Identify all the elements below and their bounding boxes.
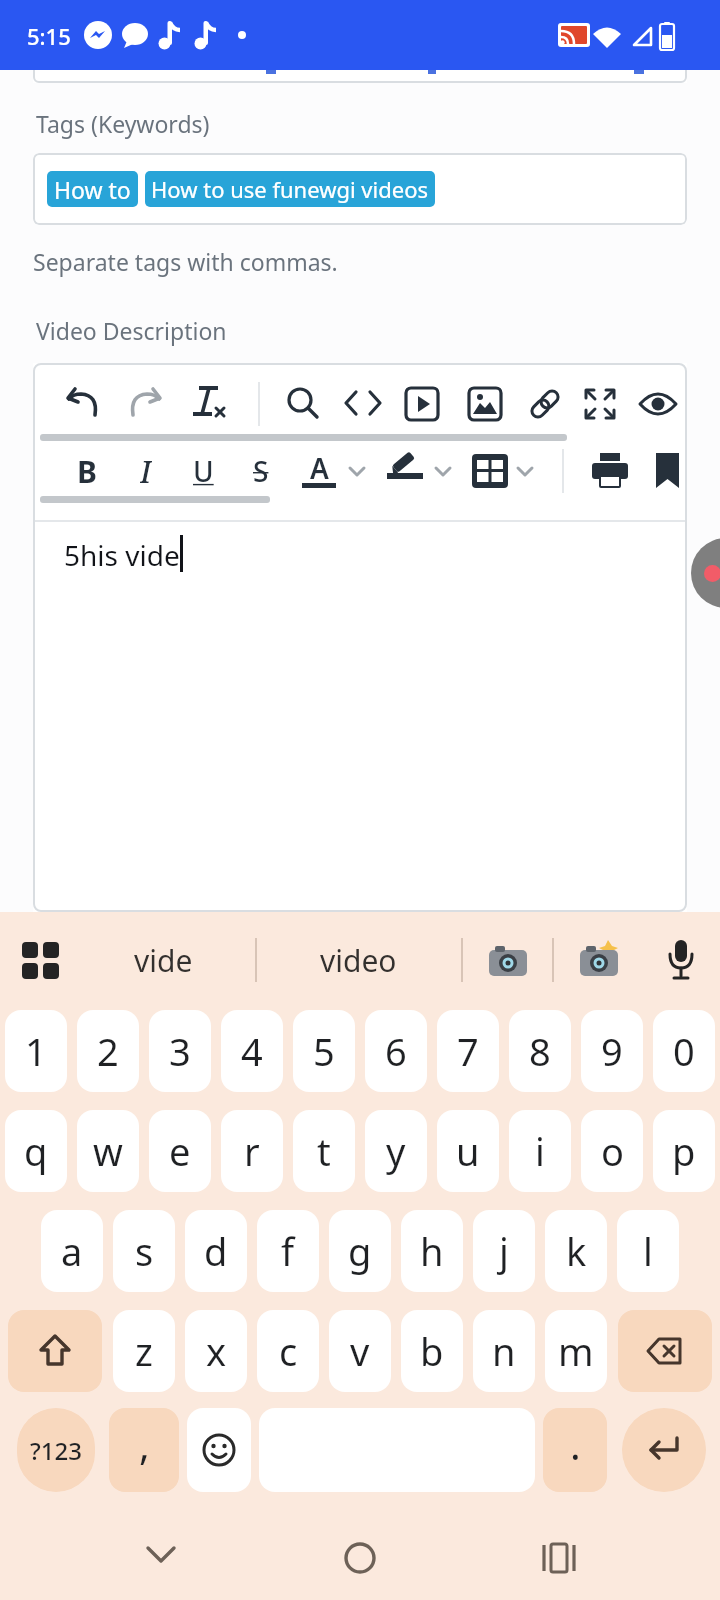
button[interactable] bbox=[121, 21, 149, 49]
button[interactable] bbox=[187, 1408, 251, 1492]
staticText: 6 bbox=[385, 1025, 407, 1077]
button[interactable] bbox=[238, 31, 246, 39]
staticText: c bbox=[279, 1325, 298, 1377]
button[interactable]: 4 bbox=[221, 1010, 283, 1092]
button[interactable] bbox=[487, 940, 529, 980]
button[interactable]: . bbox=[543, 1408, 607, 1492]
button[interactable] bbox=[404, 386, 440, 422]
button[interactable] bbox=[344, 390, 382, 418]
button[interactable] bbox=[348, 466, 366, 478]
button[interactable] bbox=[578, 940, 620, 980]
button[interactable]: j bbox=[473, 1210, 535, 1292]
button[interactable] bbox=[146, 1546, 176, 1566]
button[interactable]: How to use funewgi videos bbox=[145, 171, 435, 207]
button[interactable]: g bbox=[329, 1210, 391, 1292]
button[interactable]: p bbox=[653, 1110, 715, 1192]
staticText: vide bbox=[134, 940, 193, 981]
button[interactable]: s bbox=[113, 1210, 175, 1292]
button[interactable] bbox=[22, 942, 60, 980]
button[interactable]: n bbox=[473, 1310, 535, 1392]
staticText: How to bbox=[54, 174, 131, 205]
button[interactable]: 1 bbox=[5, 1010, 67, 1092]
staticText: v bbox=[350, 1325, 370, 1377]
button[interactable]: c bbox=[257, 1310, 319, 1392]
staticText: Video Description bbox=[36, 315, 227, 346]
button[interactable]: ?123 bbox=[17, 1408, 95, 1492]
button[interactable]: x bbox=[185, 1310, 247, 1392]
button[interactable]: q bbox=[5, 1110, 67, 1192]
button[interactable] bbox=[516, 466, 534, 478]
button[interactable]: b bbox=[401, 1310, 463, 1392]
button[interactable] bbox=[593, 25, 621, 49]
button[interactable] bbox=[527, 387, 563, 421]
button[interactable] bbox=[558, 23, 590, 49]
button[interactable] bbox=[84, 21, 112, 49]
staticText: 8 bbox=[529, 1025, 551, 1077]
button[interactable]: 9 bbox=[581, 1010, 643, 1092]
staticText: m bbox=[558, 1325, 594, 1377]
button[interactable]: u bbox=[437, 1110, 499, 1192]
button[interactable]: vide bbox=[93, 936, 233, 984]
button[interactable] bbox=[656, 453, 679, 488]
button[interactable]: 6 bbox=[365, 1010, 427, 1092]
staticText: k bbox=[566, 1225, 587, 1277]
button[interactable]: w bbox=[77, 1110, 139, 1192]
button[interactable] bbox=[542, 1544, 576, 1572]
button[interactable]: 2 bbox=[77, 1010, 139, 1092]
staticText: 9 bbox=[601, 1025, 623, 1077]
button[interactable]: o bbox=[581, 1110, 643, 1192]
button[interactable] bbox=[660, 22, 674, 50]
button[interactable]: d bbox=[185, 1210, 247, 1292]
button[interactable]: v bbox=[329, 1310, 391, 1392]
button[interactable] bbox=[128, 387, 162, 417]
button[interactable]: 8 bbox=[509, 1010, 571, 1092]
button[interactable]: , bbox=[109, 1408, 179, 1492]
button[interactable] bbox=[156, 20, 182, 50]
button[interactable] bbox=[638, 390, 678, 418]
button[interactable]: k bbox=[545, 1210, 607, 1292]
button[interactable] bbox=[622, 1408, 706, 1492]
button[interactable] bbox=[472, 454, 508, 488]
button[interactable] bbox=[632, 26, 654, 48]
button[interactable] bbox=[618, 1310, 712, 1392]
button[interactable] bbox=[192, 20, 218, 50]
staticText: S bbox=[253, 452, 269, 490]
button[interactable]: y bbox=[365, 1110, 427, 1192]
button[interactable]: e bbox=[149, 1110, 211, 1192]
button[interactable] bbox=[386, 449, 426, 479]
button[interactable]: 3 bbox=[149, 1010, 211, 1092]
button[interactable] bbox=[434, 466, 452, 478]
button[interactable] bbox=[8, 1310, 102, 1392]
button[interactable]: 7 bbox=[437, 1010, 499, 1092]
button[interactable]: 0 bbox=[653, 1010, 715, 1092]
button[interactable] bbox=[691, 538, 720, 608]
button[interactable]: z bbox=[113, 1310, 175, 1392]
button[interactable]: h bbox=[401, 1210, 463, 1292]
button[interactable]: r bbox=[221, 1110, 283, 1192]
button[interactable] bbox=[467, 386, 503, 422]
staticText: 2 bbox=[97, 1025, 119, 1077]
button[interactable]: l bbox=[617, 1210, 679, 1292]
button[interactable]: 5 bbox=[293, 1010, 355, 1092]
staticText: s bbox=[135, 1225, 154, 1277]
button[interactable] bbox=[259, 1408, 535, 1492]
button[interactable] bbox=[190, 386, 228, 422]
button[interactable] bbox=[583, 387, 617, 421]
staticText: r bbox=[244, 1125, 260, 1177]
button[interactable]: i bbox=[509, 1110, 571, 1192]
button[interactable] bbox=[66, 387, 100, 417]
button[interactable]: m bbox=[545, 1310, 607, 1392]
button[interactable]: t bbox=[293, 1110, 355, 1192]
button[interactable] bbox=[344, 1542, 376, 1574]
button[interactable]: a bbox=[41, 1210, 103, 1292]
staticText: I bbox=[140, 451, 152, 491]
button[interactable] bbox=[666, 938, 696, 982]
button[interactable] bbox=[286, 386, 322, 422]
button[interactable] bbox=[592, 453, 628, 489]
staticText: 5his vide bbox=[64, 536, 180, 572]
staticText: 5 bbox=[313, 1025, 335, 1077]
button[interactable]: f bbox=[257, 1210, 319, 1292]
button[interactable]: How to bbox=[47, 171, 138, 207]
staticText: q bbox=[24, 1125, 48, 1177]
button[interactable]: video bbox=[288, 936, 428, 984]
